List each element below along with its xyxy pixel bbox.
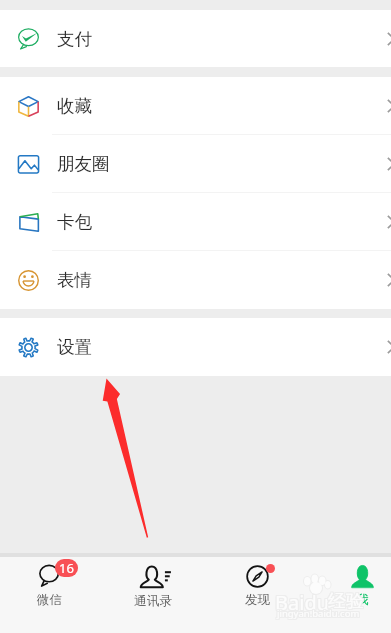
staticText: Baidu — [276, 590, 331, 617]
staticText: jingyan.baidu.com — [278, 608, 361, 621]
button[interactable]: 设置 — [0, 318, 391, 376]
staticText: 发现 — [245, 592, 270, 608]
staticText: 经验 — [328, 589, 364, 612]
button[interactable]: 卡包 — [0, 193, 391, 251]
staticText: Baidu — [274, 590, 329, 617]
button[interactable]: 收藏 — [0, 77, 391, 135]
button[interactable]: 我 — [310, 557, 391, 633]
button[interactable]: 通讯录 — [101, 557, 205, 633]
staticText: Baidu — [275, 588, 330, 615]
staticText: 支付 — [57, 28, 92, 50]
staticText: 设置 — [57, 336, 92, 358]
staticText: jingyan.baidu.com — [278, 607, 361, 620]
button[interactable]: 发现 — [205, 557, 310, 633]
staticText: 表情 — [57, 269, 92, 291]
button[interactable]: 16 — [0, 557, 101, 633]
button[interactable]: 朋友圈 — [0, 135, 391, 193]
staticText: Baidu — [276, 588, 331, 615]
staticText: jingyan.baidu.com — [278, 606, 361, 619]
staticText: jingyan.baidu.com — [277, 606, 360, 619]
staticText: jingyan.baidu.com — [276, 606, 359, 619]
staticText: Baidu — [275, 589, 330, 616]
staticText: jingyan.baidu.com — [276, 607, 359, 620]
staticText: 经验 — [327, 591, 363, 614]
staticText: 经验 — [329, 591, 365, 614]
staticText: 经验 — [327, 589, 363, 612]
staticText: 通讯录 — [134, 593, 172, 609]
staticText: Baidu — [275, 590, 330, 617]
staticText: 16 — [59, 559, 74, 577]
staticText: 我 — [356, 592, 369, 608]
staticText: Baidu — [274, 589, 329, 616]
staticText: 经验 — [329, 589, 365, 612]
staticText: 经验 — [328, 591, 364, 614]
staticText: 经验 — [327, 590, 363, 613]
staticText: Baidu — [274, 588, 329, 615]
staticText: 朋友圈 — [57, 153, 110, 175]
staticText: 经验 — [328, 590, 364, 613]
staticText: jingyan.baidu.com — [277, 607, 360, 620]
staticText: 收藏 — [57, 95, 92, 117]
staticText: Baidu — [276, 589, 331, 616]
staticText: 微信 — [37, 592, 62, 608]
button[interactable]: 支付 — [0, 10, 391, 67]
button[interactable]: 表情 — [0, 251, 391, 309]
staticText: 经验 — [329, 590, 365, 613]
staticText: jingyan.baidu.com — [277, 608, 360, 621]
staticText: 卡包 — [57, 211, 92, 233]
staticText: jingyan.baidu.com — [276, 608, 359, 621]
